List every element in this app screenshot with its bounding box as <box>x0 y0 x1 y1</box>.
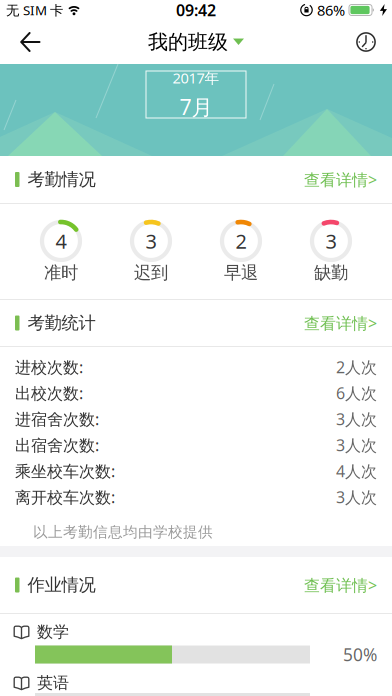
staticText: 4 <box>55 228 66 254</box>
staticText: 3人次 <box>336 486 377 508</box>
staticText: 作业情况 <box>27 574 95 596</box>
staticText: 50% <box>343 643 377 666</box>
staticText: 考勤情况 <box>27 169 95 190</box>
staticText: 出校次数: <box>15 382 83 404</box>
staticText: 2 <box>235 228 246 254</box>
staticText: 准时 <box>44 262 78 283</box>
button[interactable]: 查看详情> <box>304 169 377 190</box>
staticText: 迟到 <box>134 262 168 283</box>
staticText: 英语 <box>37 673 69 693</box>
staticText: 09:42 <box>176 0 216 21</box>
staticText: 数学 <box>37 622 69 642</box>
staticText: 6人次 <box>336 382 377 404</box>
staticText: 出宿舍次数: <box>15 434 99 456</box>
staticText: 我的班级 <box>148 30 228 54</box>
staticText: 3人次 <box>336 434 377 456</box>
staticText: 进校次数: <box>15 356 83 378</box>
staticText: 乘坐校车次数: <box>15 460 115 482</box>
staticText: 查看详情> <box>304 312 377 334</box>
staticText: 查看详情> <box>304 169 377 190</box>
button[interactable]: Back <box>0 32 40 52</box>
button[interactable]: 英语 <box>0 666 392 693</box>
staticText: 7月 <box>179 93 212 121</box>
staticText: 86% <box>317 0 345 20</box>
button[interactable]: 查看详情> <box>304 312 377 334</box>
staticText: 无 SIM 卡 <box>6 1 63 19</box>
staticText: 早退 <box>224 262 258 283</box>
button[interactable]: History <box>356 32 392 52</box>
button[interactable]: 数学 <box>0 622 392 666</box>
staticText: 进宿舍次数: <box>15 408 99 430</box>
staticText: 3 <box>325 228 336 254</box>
staticText: 3人次 <box>336 408 377 430</box>
staticText: 缺勤 <box>314 262 348 283</box>
staticText: 离开校车次数: <box>15 486 115 508</box>
staticText: 查看详情> <box>304 574 377 596</box>
staticText: 2人次 <box>336 356 377 378</box>
staticText: 2017年 <box>172 68 219 88</box>
staticText: 以上考勤信息均由学校提供 <box>33 523 213 541</box>
staticText: 4人次 <box>336 460 377 482</box>
staticText: 考勤统计 <box>27 312 95 334</box>
button[interactable]: 查看详情> <box>304 574 377 596</box>
staticText: 3 <box>145 228 156 254</box>
button[interactable]: 我的班级 <box>148 30 244 54</box>
